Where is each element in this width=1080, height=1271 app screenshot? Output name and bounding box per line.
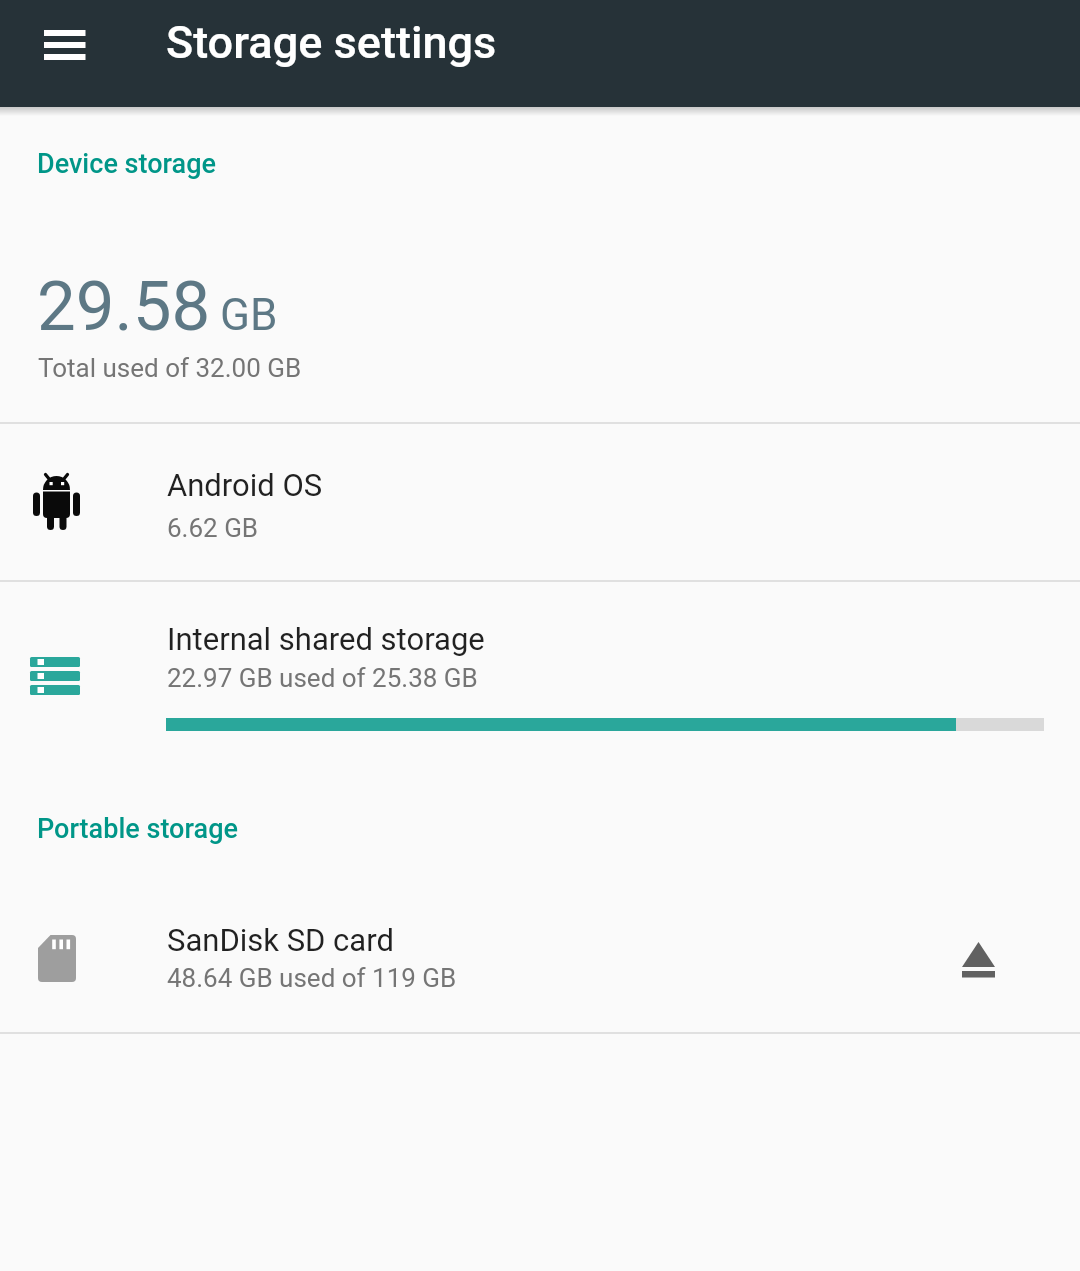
staticText: Device storage — [37, 148, 217, 180]
button[interactable] — [0, 580, 1080, 760]
staticText: 29.58 — [37, 266, 211, 347]
button[interactable] — [942, 922, 1015, 998]
button[interactable] — [32, 17, 98, 77]
staticText: Internal shared storage — [167, 621, 485, 657]
staticText: 22.97 GB used of 25.38 GB — [167, 663, 478, 693]
staticText: Android OS — [167, 467, 323, 503]
staticText: Storage settings — [166, 16, 497, 69]
staticText: Portable storage — [37, 813, 238, 845]
staticText: SanDisk SD card — [167, 922, 394, 958]
button[interactable] — [0, 422, 1080, 580]
staticText: GB — [220, 289, 278, 341]
staticText: Total used of 32.00 GB — [38, 353, 302, 383]
button[interactable] — [0, 880, 1080, 1032]
staticText: 6.62 GB — [167, 513, 259, 543]
staticText: 48.64 GB used of 119 GB — [167, 963, 457, 993]
